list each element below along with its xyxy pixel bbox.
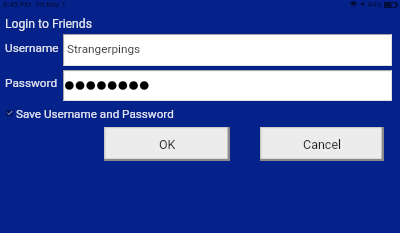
staticText: Save Username and Password [16,107,174,121]
other: Wi-Fi [350,2,357,7]
staticText: Fri Mar 1 [36,0,66,9]
button[interactable]: Cancel [260,127,384,161]
other: Location [360,2,365,7]
staticText: Cancel [303,137,342,152]
staticText: Password [5,76,58,90]
staticText: 6:45 PM [3,0,32,9]
button[interactable] [63,70,392,101]
staticText: Strangerpings [67,42,141,56]
other: Save username and password checkbox [6,110,13,116]
button[interactable]: Strangerpings [63,34,392,66]
button[interactable]: Save username and password checkbox [5,107,177,121]
staticText: Login to Friends [5,17,92,31]
staticText: Username [5,41,59,55]
staticText: 64% [368,0,383,9]
other: Battery 64 percent [384,2,398,8]
staticText: OK [159,137,176,152]
button[interactable]: OK [104,127,230,161]
